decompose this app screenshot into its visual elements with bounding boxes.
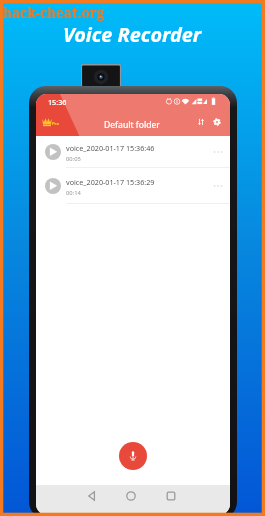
button[interactable]: Home xyxy=(123,488,139,504)
staticText: 00:05 xyxy=(66,155,81,163)
staticText: 00:14 xyxy=(66,189,81,197)
button[interactable]: Recents xyxy=(163,488,179,504)
button[interactable]: Upgrade to Pro xyxy=(42,117,60,126)
button[interactable]: Settings xyxy=(210,115,224,129)
staticText: Voice Recorder xyxy=(63,21,202,48)
staticText: voice_2020-01-17 15:36:29 xyxy=(66,177,155,187)
button[interactable]: Sort xyxy=(194,115,208,129)
staticText: voice_2020-01-17 15:36:46 xyxy=(66,143,155,153)
button[interactable]: Back xyxy=(84,488,100,504)
button[interactable]: More options xyxy=(212,180,224,192)
staticText: 15:36 xyxy=(48,97,67,107)
button[interactable]: voice_2020-01-17 15:36:46 xyxy=(36,136,230,167)
staticText: Pro xyxy=(52,121,60,127)
staticText: hack-cheat.org xyxy=(3,4,105,22)
staticText: Default folder xyxy=(104,119,160,131)
button[interactable]: voice_2020-01-17 15:36:29 xyxy=(36,168,230,203)
button[interactable]: Record xyxy=(119,442,147,470)
button[interactable]: More options xyxy=(212,146,224,158)
